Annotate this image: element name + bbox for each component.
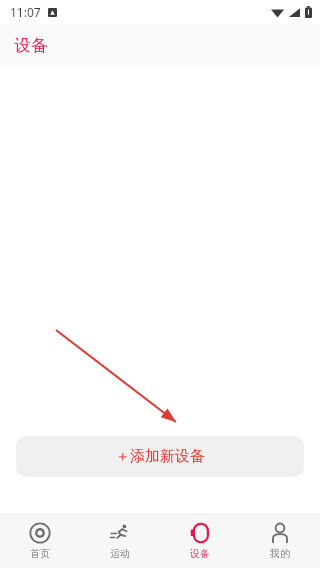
staticText: 我的 <box>270 547 290 560</box>
button[interactable]: 运动 <box>80 514 160 568</box>
staticText: 首页 <box>30 547 50 560</box>
staticText: ＋添加新设备 <box>115 447 205 466</box>
button[interactable]: 首页 <box>0 514 80 568</box>
button[interactable]: ＋添加新设备 <box>16 436 304 477</box>
button[interactable]: 我的 <box>240 514 320 568</box>
staticText: 11:07 <box>10 4 41 20</box>
staticText: 运动 <box>110 547 130 560</box>
staticText: 设备 <box>14 35 48 56</box>
staticText: 设备 <box>190 547 210 560</box>
button[interactable]: 设备 <box>160 514 240 568</box>
